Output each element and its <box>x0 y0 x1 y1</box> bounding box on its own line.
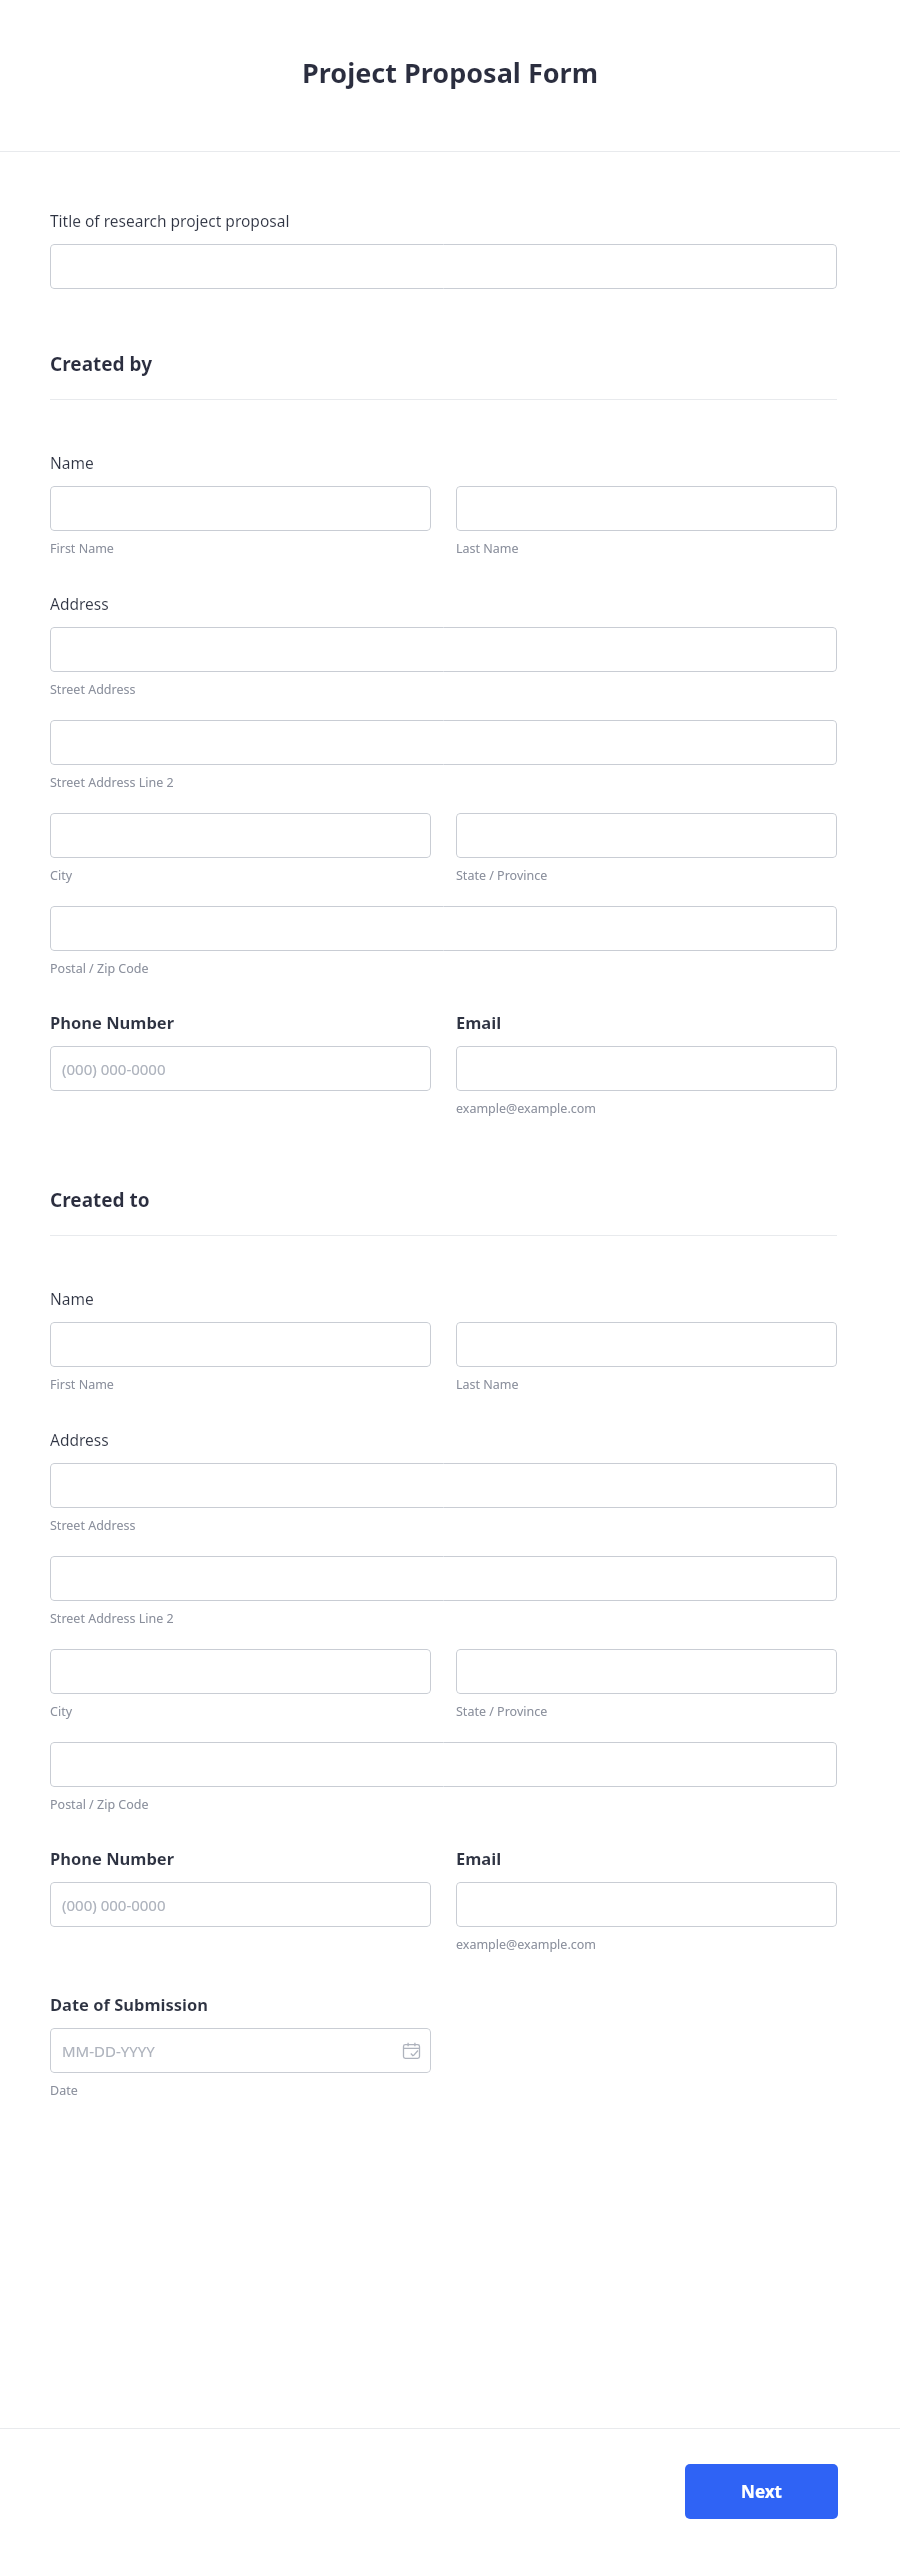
button[interactable] <box>456 813 837 858</box>
staticText: Date of Submission <box>50 1993 209 2015</box>
button[interactable]: (000) 000-0000 <box>50 1882 431 1927</box>
staticText: Created to <box>50 1187 150 1213</box>
staticText: Postal / Zip Code <box>50 960 149 977</box>
button[interactable] <box>50 1556 837 1601</box>
staticText: Address <box>50 1429 109 1450</box>
button[interactable] <box>50 486 431 531</box>
staticText: Postal / Zip Code <box>50 1796 149 1813</box>
button[interactable] <box>50 720 837 765</box>
staticText: Last Name <box>456 1376 519 1393</box>
staticText: Street Address <box>50 1517 136 1534</box>
staticText: Name <box>50 1288 94 1309</box>
staticText: MM-DD-YYYY <box>62 2041 155 2061</box>
staticText: Title of research project proposal <box>50 210 290 231</box>
button[interactable] <box>50 1742 837 1787</box>
staticText: City <box>50 1703 73 1720</box>
staticText: (000) 000-0000 <box>62 1059 166 1079</box>
staticText: example@example.com <box>456 1100 596 1117</box>
staticText: Next <box>741 2480 782 2503</box>
staticText: (000) 000-0000 <box>62 1895 166 1915</box>
staticText: Street Address <box>50 681 136 698</box>
button[interactable] <box>50 813 431 858</box>
button[interactable] <box>50 1322 431 1367</box>
button[interactable]: MM-DD-YYYY <box>50 2028 431 2073</box>
button[interactable] <box>50 1649 431 1694</box>
staticText: Name <box>50 452 94 473</box>
staticText: Phone Number <box>50 1011 175 1033</box>
button[interactable]: (000) 000-0000 <box>50 1046 431 1091</box>
button[interactable] <box>456 1882 837 1927</box>
staticText: State / Province <box>456 867 548 884</box>
staticText: Email <box>456 1011 502 1033</box>
staticText: example@example.com <box>456 1936 596 1953</box>
staticText: City <box>50 867 73 884</box>
button[interactable] <box>456 1046 837 1091</box>
staticText: Email <box>456 1847 502 1869</box>
button[interactable]: Next <box>685 2464 838 2519</box>
button[interactable] <box>50 244 837 289</box>
button[interactable] <box>456 486 837 531</box>
button[interactable] <box>456 1649 837 1694</box>
button[interactable] <box>456 1322 837 1367</box>
staticText: Project Proposal Form <box>0 54 900 91</box>
button[interactable] <box>50 906 837 951</box>
staticText: First Name <box>50 540 114 557</box>
button[interactable] <box>50 627 837 672</box>
staticText: First Name <box>50 1376 114 1393</box>
staticText: Date <box>50 2082 78 2099</box>
staticText: Address <box>50 593 109 614</box>
staticText: Last Name <box>456 540 519 557</box>
staticText: Created by <box>50 351 153 377</box>
staticText: Phone Number <box>50 1847 175 1869</box>
staticText: State / Province <box>456 1703 548 1720</box>
staticText: Street Address Line 2 <box>50 774 174 791</box>
staticText: Street Address Line 2 <box>50 1610 174 1627</box>
button[interactable] <box>50 1463 837 1508</box>
